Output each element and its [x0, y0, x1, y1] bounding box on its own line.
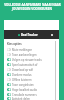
staticText: Download op wifi — [12, 68, 34, 72]
button[interactable]: Offline luisteren — [4, 77, 59, 82]
button[interactable]: Donkere modus — [4, 72, 59, 77]
staticText: VOLLEDIGE AANPASBARE NAAM NAAR — [4, 3, 61, 7]
staticText: Toon songteksten — [12, 83, 34, 87]
button[interactable]: BeatTracker — [4, 30, 59, 39]
button[interactable]: Crossfade nummers — [4, 92, 59, 97]
staticText: Speel automatisch af — [12, 63, 38, 67]
button[interactable]: Toon aanbevelingen — [4, 52, 59, 57]
staticText: JOUW EIGEN VOORKEUREN — [12, 7, 52, 11]
button[interactable]: Speel automatisch af — [4, 62, 59, 67]
staticText: Mute meldingen — [12, 48, 33, 52]
button[interactable]: Download op wifi — [4, 67, 59, 72]
staticText: Toon aanbevelingen — [12, 53, 37, 57]
button[interactable]: Mute meldingen — [4, 47, 59, 52]
button[interactable]: Hoge kwaliteit audio — [4, 87, 59, 92]
staticText: Crossfade nummers — [12, 93, 37, 97]
button[interactable]: Volgen op nieuwe tracks — [4, 57, 59, 62]
staticText: Activiteit delen — [12, 97, 30, 100]
staticText: BeatTracker — [21, 33, 38, 37]
staticText: Hoge kwaliteit audio — [12, 88, 38, 92]
staticText: Donkere modus — [12, 73, 32, 77]
staticText: Kies opties — [7, 42, 22, 46]
staticText: Offline luisteren — [12, 78, 32, 82]
staticText: Volgen op nieuwe tracks — [12, 58, 42, 62]
button[interactable]: Activiteit delen — [4, 97, 59, 100]
button[interactable]: Toon songteksten — [4, 82, 59, 87]
